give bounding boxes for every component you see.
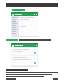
button[interactable] [12,48,37,55]
button[interactable]: Screenshot of the app list screen [11,43,38,67]
button[interactable]: Screenshot of the app editor [11,12,38,37]
button[interactable] [12,56,37,65]
